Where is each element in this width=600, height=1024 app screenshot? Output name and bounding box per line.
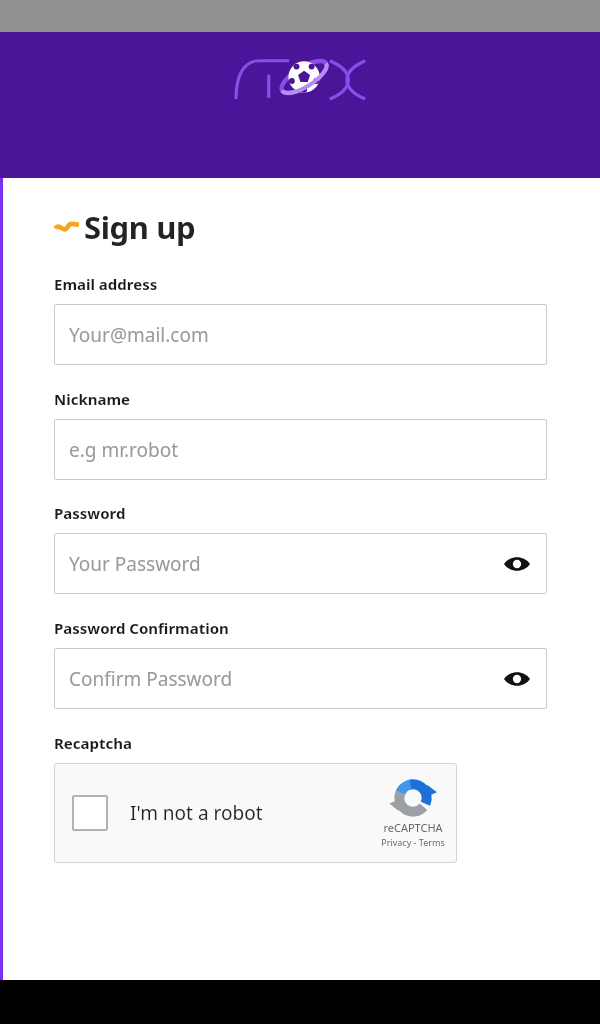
staticText: e.g mr.robot bbox=[69, 437, 532, 463]
staticText: reCAPTCHA bbox=[383, 820, 443, 835]
button[interactable]: I'm not a robot checkbox bbox=[72, 795, 108, 831]
staticText: Sign up bbox=[84, 206, 196, 248]
button[interactable]: Your@mail.com bbox=[54, 304, 547, 365]
staticText: Privacy - Terms bbox=[381, 836, 445, 848]
button[interactable]: Show password bbox=[502, 549, 532, 579]
staticText: Password Confirmation bbox=[54, 618, 229, 638]
button[interactable]: Confirm Password bbox=[54, 648, 547, 709]
staticText: Recaptcha bbox=[54, 733, 132, 753]
staticText: Confirm Password bbox=[69, 666, 502, 692]
button[interactable]: Show password bbox=[502, 664, 532, 694]
staticText: Nickname bbox=[54, 389, 131, 409]
staticText: Your Password bbox=[69, 551, 502, 577]
button[interactable]: e.g mr.robot bbox=[54, 419, 547, 480]
staticText: Your@mail.com bbox=[69, 322, 532, 348]
staticText: Email address bbox=[54, 274, 158, 294]
button[interactable]: Your Password bbox=[54, 533, 547, 594]
button[interactable]: I'm not a robot checkbox bbox=[54, 763, 457, 863]
staticText: I'm not a robot bbox=[130, 800, 263, 826]
staticText: Password bbox=[54, 503, 126, 523]
